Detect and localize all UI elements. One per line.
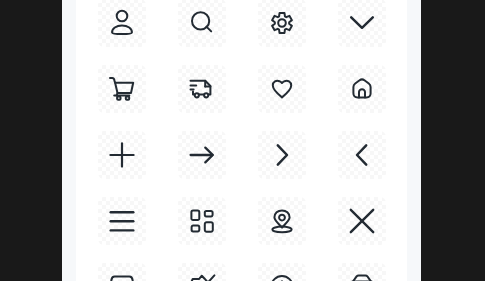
button[interactable]: Basket bbox=[338, 263, 386, 281]
button[interactable]: Dashboard bbox=[178, 197, 226, 245]
button[interactable]: Delivery bbox=[178, 65, 226, 113]
button[interactable]: Add bbox=[98, 131, 146, 179]
button[interactable]: Favorite bbox=[258, 65, 306, 113]
button[interactable]: Home bbox=[338, 65, 386, 113]
button[interactable]: Search bbox=[178, 0, 226, 47]
button[interactable]: Back bbox=[338, 131, 386, 179]
button[interactable]: Close bbox=[338, 197, 386, 245]
button[interactable]: Account bbox=[98, 0, 146, 47]
button[interactable]: Location bbox=[258, 197, 306, 245]
button[interactable]: Settings bbox=[258, 0, 306, 47]
button[interactable]: Next bbox=[178, 131, 226, 179]
button[interactable]: Umbrella bbox=[258, 263, 306, 281]
button[interactable]: Forward bbox=[258, 131, 306, 179]
button[interactable]: Cut bbox=[178, 263, 226, 281]
button[interactable]: Bag bbox=[98, 263, 146, 281]
button[interactable]: Menu bbox=[98, 197, 146, 245]
button[interactable]: Expand bbox=[338, 0, 386, 47]
button[interactable]: Cart bbox=[98, 65, 146, 113]
